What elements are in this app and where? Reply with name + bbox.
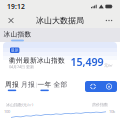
- staticText: 全部: [54, 80, 68, 89]
- staticText: 最新: [11, 48, 19, 53]
- staticText: 冰山指数: [3, 30, 31, 38]
- staticText: 周报: [5, 80, 19, 89]
- button[interactable]: 一年: [37, 81, 53, 94]
- button[interactable]: More: [103, 14, 115, 26]
- staticText: 衢州最新冰山指数: [9, 56, 65, 65]
- staticText: 冰山大数据局: [36, 16, 84, 25]
- staticText: 房价指数: [92, 102, 108, 107]
- staticText: 10k: [109, 109, 115, 114]
- staticText: 元/㎡: [104, 63, 113, 68]
- button[interactable]: 周报: [4, 81, 20, 94]
- button[interactable]: Download: [101, 81, 117, 92]
- staticText: 04月24日 更新: [9, 64, 34, 69]
- staticText: 月报: [21, 80, 35, 89]
- staticText: 15,499: [70, 55, 103, 69]
- button[interactable]: Fullscreen: [85, 81, 101, 92]
- staticText: 19:12: [7, 2, 25, 11]
- button[interactable]: 全部: [53, 81, 69, 94]
- staticText: 100: [4, 109, 10, 114]
- staticText: 冰山指数(元/㎡): [6, 102, 33, 107]
- button[interactable]: 月报: [20, 81, 36, 94]
- staticText: 一年: [38, 80, 52, 89]
- button[interactable]: Close: [5, 14, 17, 26]
- button[interactable]: 冰山指数: [3, 28, 32, 42]
